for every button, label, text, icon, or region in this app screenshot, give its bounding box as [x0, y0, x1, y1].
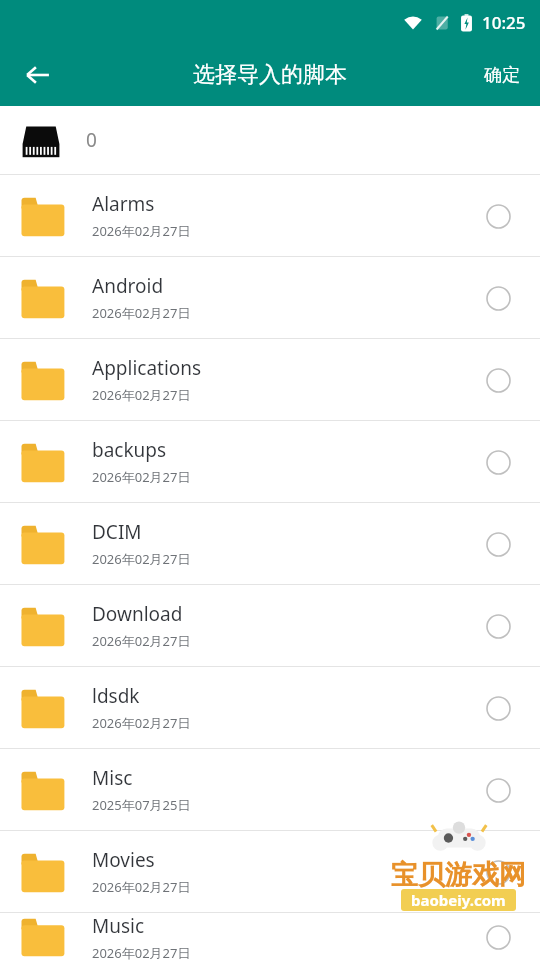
button[interactable]: DCIM [0, 503, 540, 584]
staticText: 2026年02月27日 [92, 944, 191, 960]
staticText: 2026年02月27日 [92, 304, 191, 322]
staticText: 2026年02月27日 [92, 468, 191, 486]
staticText: 0 [86, 127, 97, 153]
staticText: DCIM [92, 519, 142, 545]
button[interactable]: Download [0, 585, 540, 666]
staticText: 选择导入的脚本 [193, 61, 347, 89]
staticText: 10:25 [482, 11, 526, 34]
button[interactable]: Select ldsdk [476, 686, 520, 730]
button[interactable]: Movies [0, 831, 540, 912]
staticText: 2026年02月27日 [92, 632, 191, 650]
button[interactable]: Select Misc [476, 768, 520, 812]
staticText: Misc [92, 765, 133, 791]
staticText: 2026年02月27日 [92, 222, 191, 240]
button[interactable]: backups [0, 421, 540, 502]
button[interactable]: Alarms [0, 175, 540, 256]
button[interactable]: Android [0, 257, 540, 338]
staticText: 2026年02月27日 [92, 386, 191, 404]
button[interactable]: Select Movies [476, 850, 520, 894]
staticText: Movies [92, 847, 155, 873]
staticText: 2026年02月27日 [92, 550, 191, 568]
staticText: 宝贝游戏网 [391, 858, 526, 892]
staticText: Alarms [92, 191, 155, 217]
button[interactable]: Select Alarms [476, 194, 520, 238]
button[interactable]: Select backups [476, 440, 520, 484]
staticText: Download [92, 601, 183, 627]
button[interactable]: Select Android [476, 276, 520, 320]
staticText: backups [92, 437, 167, 463]
button[interactable]: 确定 [464, 44, 540, 106]
staticText: 2026年02月27日 [92, 714, 191, 732]
button[interactable]: Select Download [476, 604, 520, 648]
button[interactable]: Music [0, 913, 540, 960]
button[interactable]: Applications [0, 339, 540, 420]
button[interactable]: Misc [0, 749, 540, 830]
button[interactable]: Back [10, 47, 66, 103]
staticText: 2026年02月27日 [92, 878, 191, 896]
button[interactable]: Select DCIM [476, 522, 520, 566]
button[interactable]: Select Applications [476, 358, 520, 402]
button[interactable]: 0 [0, 106, 540, 174]
staticText: 确定 [484, 64, 520, 87]
staticText: baobeiy.com [411, 890, 506, 910]
staticText: Music [92, 913, 145, 939]
staticText: ldsdk [92, 683, 140, 709]
button[interactable]: ldsdk [0, 667, 540, 748]
staticText: 2025年07月25日 [92, 796, 191, 814]
button[interactable]: Select Music [476, 915, 520, 959]
staticText: Applications [92, 355, 202, 381]
staticText: Android [92, 273, 164, 299]
